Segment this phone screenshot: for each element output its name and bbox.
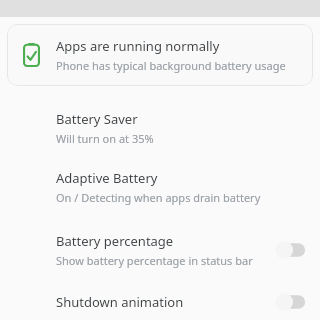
button[interactable]: Toggle setting bbox=[272, 239, 308, 261]
button[interactable]: Shutdown animation bbox=[0, 283, 320, 320]
button[interactable]: Adaptive Battery bbox=[0, 157, 320, 217]
staticText: Will turn on at 35% bbox=[56, 131, 154, 146]
button[interactable]: Apps are running normally bbox=[7, 24, 313, 86]
staticText: Shutdown animation bbox=[56, 293, 184, 311]
button[interactable]: Battery Saver bbox=[0, 99, 320, 157]
staticText: Battery Saver bbox=[56, 110, 138, 128]
staticText: Adaptive Battery bbox=[56, 169, 158, 187]
button[interactable]: Toggle setting bbox=[272, 291, 308, 313]
staticText: On / Detecting when apps drain battery bbox=[56, 190, 261, 205]
staticText: Phone has typical background battery usa… bbox=[56, 58, 286, 73]
button[interactable]: Battery percentage bbox=[0, 217, 320, 283]
staticText: Apps are running normally bbox=[56, 37, 220, 55]
staticText: Show battery percentage in status bar bbox=[56, 253, 253, 268]
staticText: Battery percentage bbox=[56, 232, 174, 250]
